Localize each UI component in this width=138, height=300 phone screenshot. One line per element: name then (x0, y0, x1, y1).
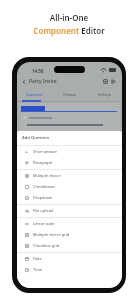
staticText: All-in-One (0, 12, 138, 23)
staticText: Time (33, 267, 42, 272)
staticText: Linear scale (33, 221, 55, 226)
button[interactable]: Multiple choice (17, 170, 122, 181)
staticText: Multiple choice grid (33, 232, 70, 237)
other: Back (22, 80, 26, 84)
staticText: Preview (63, 92, 76, 97)
button[interactable]: Checkbox grid (17, 240, 122, 251)
button[interactable]: Send (109, 77, 118, 86)
button[interactable]: Preview (52, 88, 87, 102)
button[interactable]: Questions (17, 88, 52, 102)
staticText: Checkboxes (33, 184, 55, 189)
staticText: Multiple choice (33, 173, 61, 178)
button[interactable]: Dropdown (17, 192, 122, 203)
button[interactable]: Preview (101, 77, 110, 86)
button[interactable]: Settings (87, 88, 122, 102)
button[interactable]: Back (20, 76, 59, 87)
button[interactable]: Paragraph (17, 157, 122, 168)
button[interactable]: Linear scale (17, 218, 122, 229)
staticText: Component Editor (0, 25, 138, 36)
staticText: Settings (98, 92, 112, 97)
button[interactable]: Checkboxes (17, 181, 122, 192)
button[interactable]: Short answer (17, 146, 122, 157)
button[interactable]: Date (17, 253, 122, 264)
staticText: 14:58 (32, 68, 44, 74)
staticText: Questions (26, 92, 43, 97)
staticText: Short answer (33, 149, 58, 154)
staticText: Dropdown (33, 195, 53, 200)
button[interactable]: File upload (17, 205, 122, 216)
staticText: Checkbox grid (33, 243, 60, 248)
button[interactable]: Time (17, 264, 122, 275)
button[interactable]: Multiple choice grid (17, 229, 122, 240)
staticText: Paragraph (33, 160, 53, 165)
staticText: Add Question (22, 135, 50, 141)
staticText: Date (33, 256, 42, 261)
staticText: File upload (33, 208, 53, 213)
staticText: Party Invite (29, 78, 57, 85)
